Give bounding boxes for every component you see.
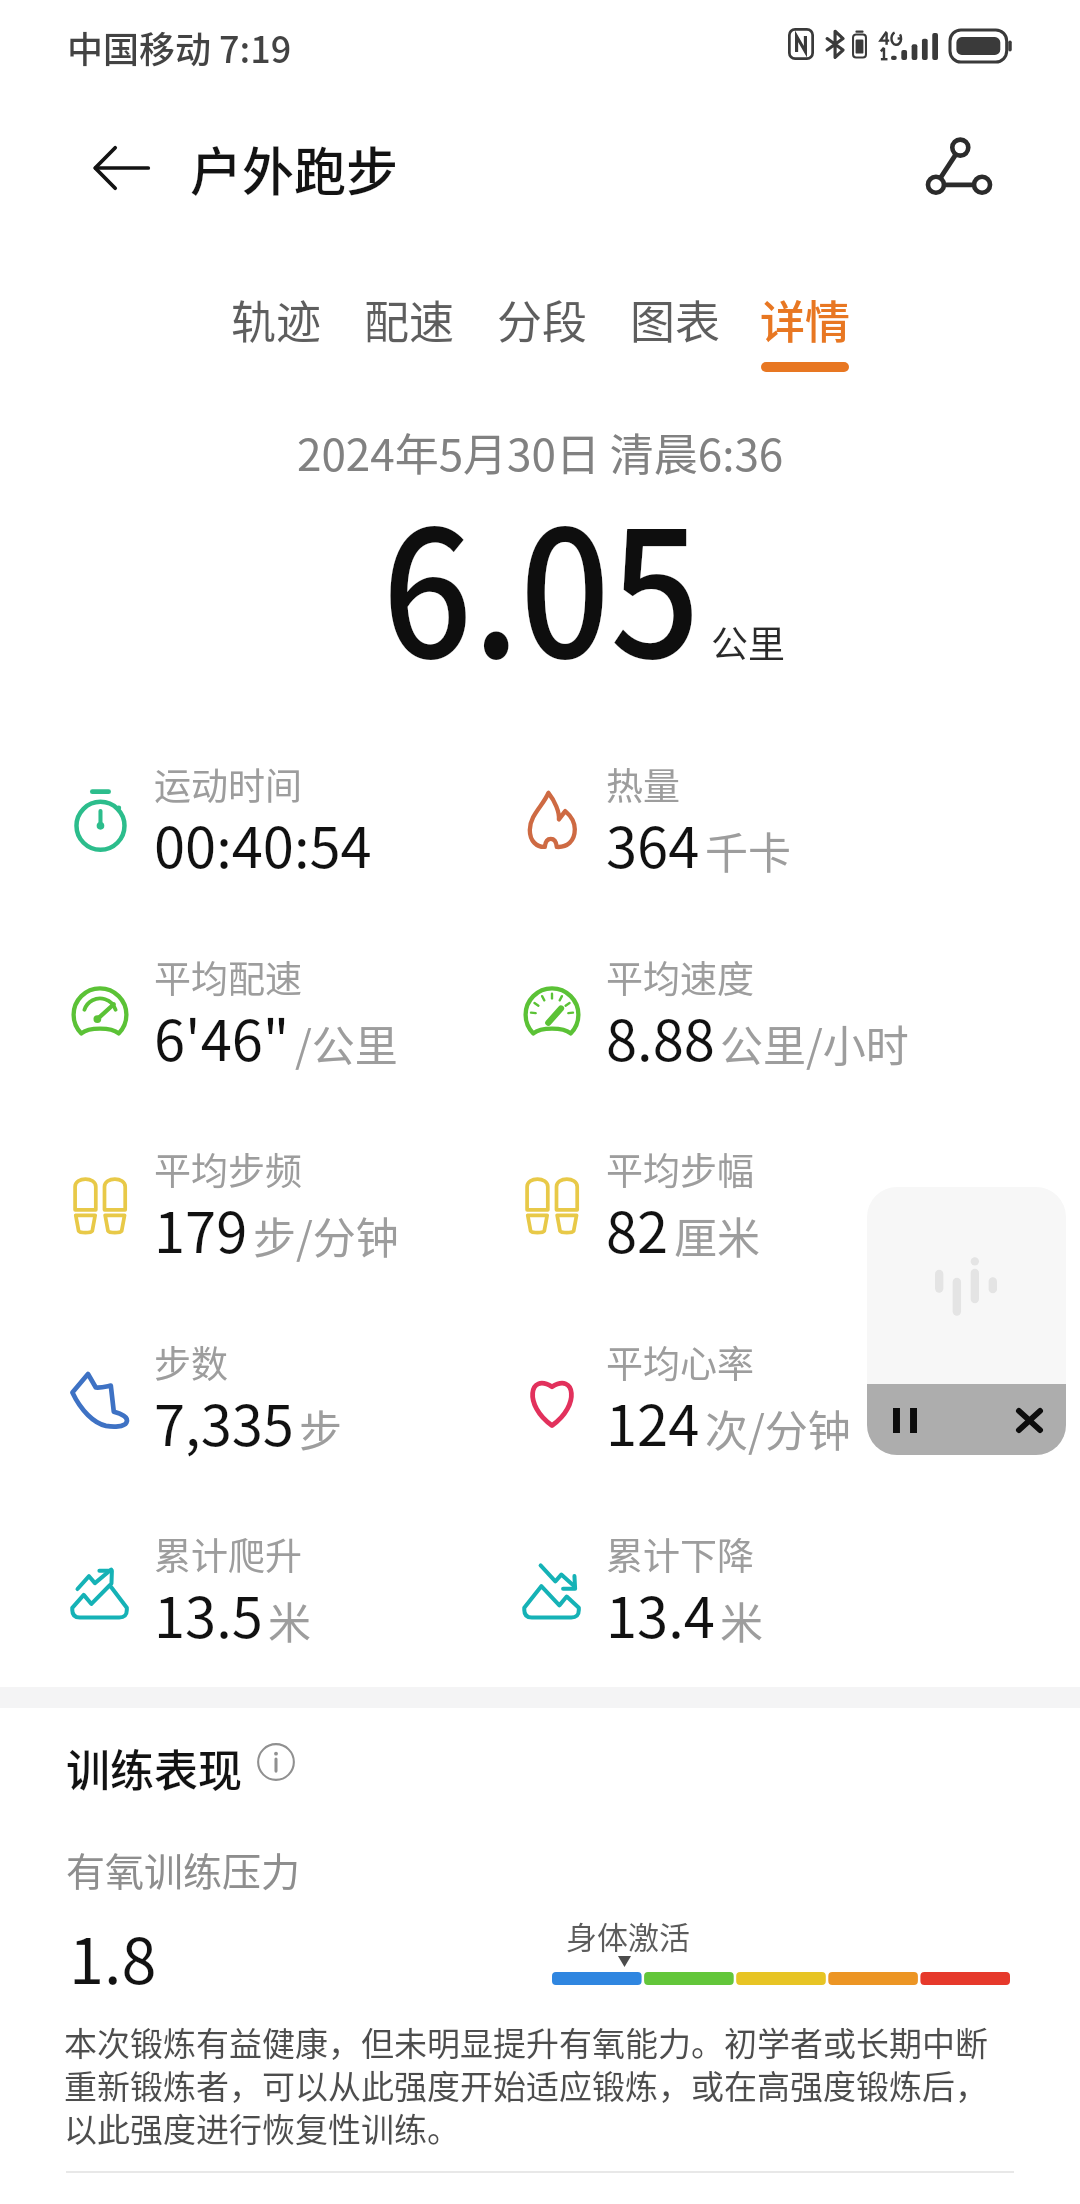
button[interactable]: 详情	[739, 287, 871, 383]
staticText: 累计爬升	[154, 1527, 302, 1581]
button[interactable]: 平均配速	[72, 931, 542, 1096]
button[interactable]: 累计下降	[524, 1508, 994, 1673]
staticText: 步/分钟	[253, 1204, 399, 1266]
button[interactable]: Close	[1003, 1394, 1055, 1446]
staticText: 次/分钟	[705, 1397, 851, 1459]
button[interactable]: 运动时间	[72, 738, 542, 903]
staticText: /公里	[295, 1012, 398, 1074]
staticText: 本次锻炼有益健康，但未明显提升有氧能力。初学者或长期中断重新锻炼者，可以从此强度…	[64, 2018, 1008, 2152]
staticText: 配速	[364, 287, 455, 352]
staticText: 身体激活	[566, 1913, 690, 1958]
staticText: 累计下降	[606, 1527, 754, 1581]
staticText: 6.05	[382, 454, 701, 708]
staticText: 平均心率	[606, 1335, 754, 1389]
button[interactable]: 步数	[72, 1316, 542, 1481]
button[interactable]: Recording widget	[867, 1187, 1066, 1455]
button[interactable]: 平均速度	[524, 931, 994, 1096]
staticText: 124	[606, 1381, 700, 1462]
staticText: 6'46"	[154, 996, 290, 1077]
staticText: 13.4	[606, 1573, 715, 1654]
staticText: 步	[299, 1397, 342, 1459]
staticText: 米	[720, 1589, 763, 1651]
staticText: 7,335	[154, 1381, 294, 1462]
staticText: 分段	[497, 287, 588, 352]
staticText: 千卡	[705, 819, 791, 881]
staticText: 户外跑步	[190, 131, 399, 206]
button[interactable]: 平均步频	[72, 1123, 542, 1288]
staticText: 平均配速	[154, 950, 302, 1004]
button[interactable]: 平均步幅	[524, 1123, 994, 1288]
staticText: 2024年5月30日 清晨6:36	[297, 420, 784, 484]
button[interactable]: Back	[66, 120, 176, 216]
staticText: 1.8	[69, 1911, 157, 2002]
staticText: 82	[606, 1188, 669, 1269]
staticText: 步数	[154, 1335, 228, 1389]
button[interactable]: 配速	[343, 287, 475, 383]
staticText: 热量	[606, 757, 680, 811]
staticText: 厘米	[674, 1204, 760, 1266]
staticText: 8.88	[606, 996, 715, 1077]
button[interactable]: 分段	[476, 287, 608, 383]
staticText: 运动时间	[154, 757, 302, 811]
staticText: 13.5	[154, 1573, 263, 1654]
staticText: 179	[154, 1188, 248, 1269]
button[interactable]: Share	[909, 120, 1009, 216]
staticText: 平均步幅	[606, 1142, 754, 1196]
staticText: 中国移动 7:19	[67, 21, 292, 73]
staticText: 平均速度	[606, 950, 754, 1004]
button[interactable]: 轨迹	[210, 287, 342, 383]
button[interactable]: 平均心率	[524, 1316, 994, 1481]
staticText: 图表	[630, 287, 721, 352]
staticText: 轨迹	[231, 287, 322, 352]
button[interactable]: 热量	[524, 738, 994, 903]
staticText: 364	[606, 803, 700, 884]
staticText: 详情	[760, 287, 851, 352]
button[interactable]: 累计爬升	[72, 1508, 542, 1673]
button[interactable]: 图表	[609, 287, 741, 383]
staticText: 公里/小时	[720, 1012, 909, 1074]
button[interactable]: Info	[252, 1738, 300, 1786]
staticText: 米	[268, 1589, 311, 1651]
staticText: 00:40:54	[154, 803, 372, 884]
staticText: 有氧训练压力	[66, 1841, 301, 1897]
staticText: 平均步频	[154, 1142, 302, 1196]
button[interactable]: Pause	[879, 1394, 931, 1446]
staticText: 公里	[711, 615, 785, 669]
staticText: 训练表现	[66, 1736, 242, 1800]
